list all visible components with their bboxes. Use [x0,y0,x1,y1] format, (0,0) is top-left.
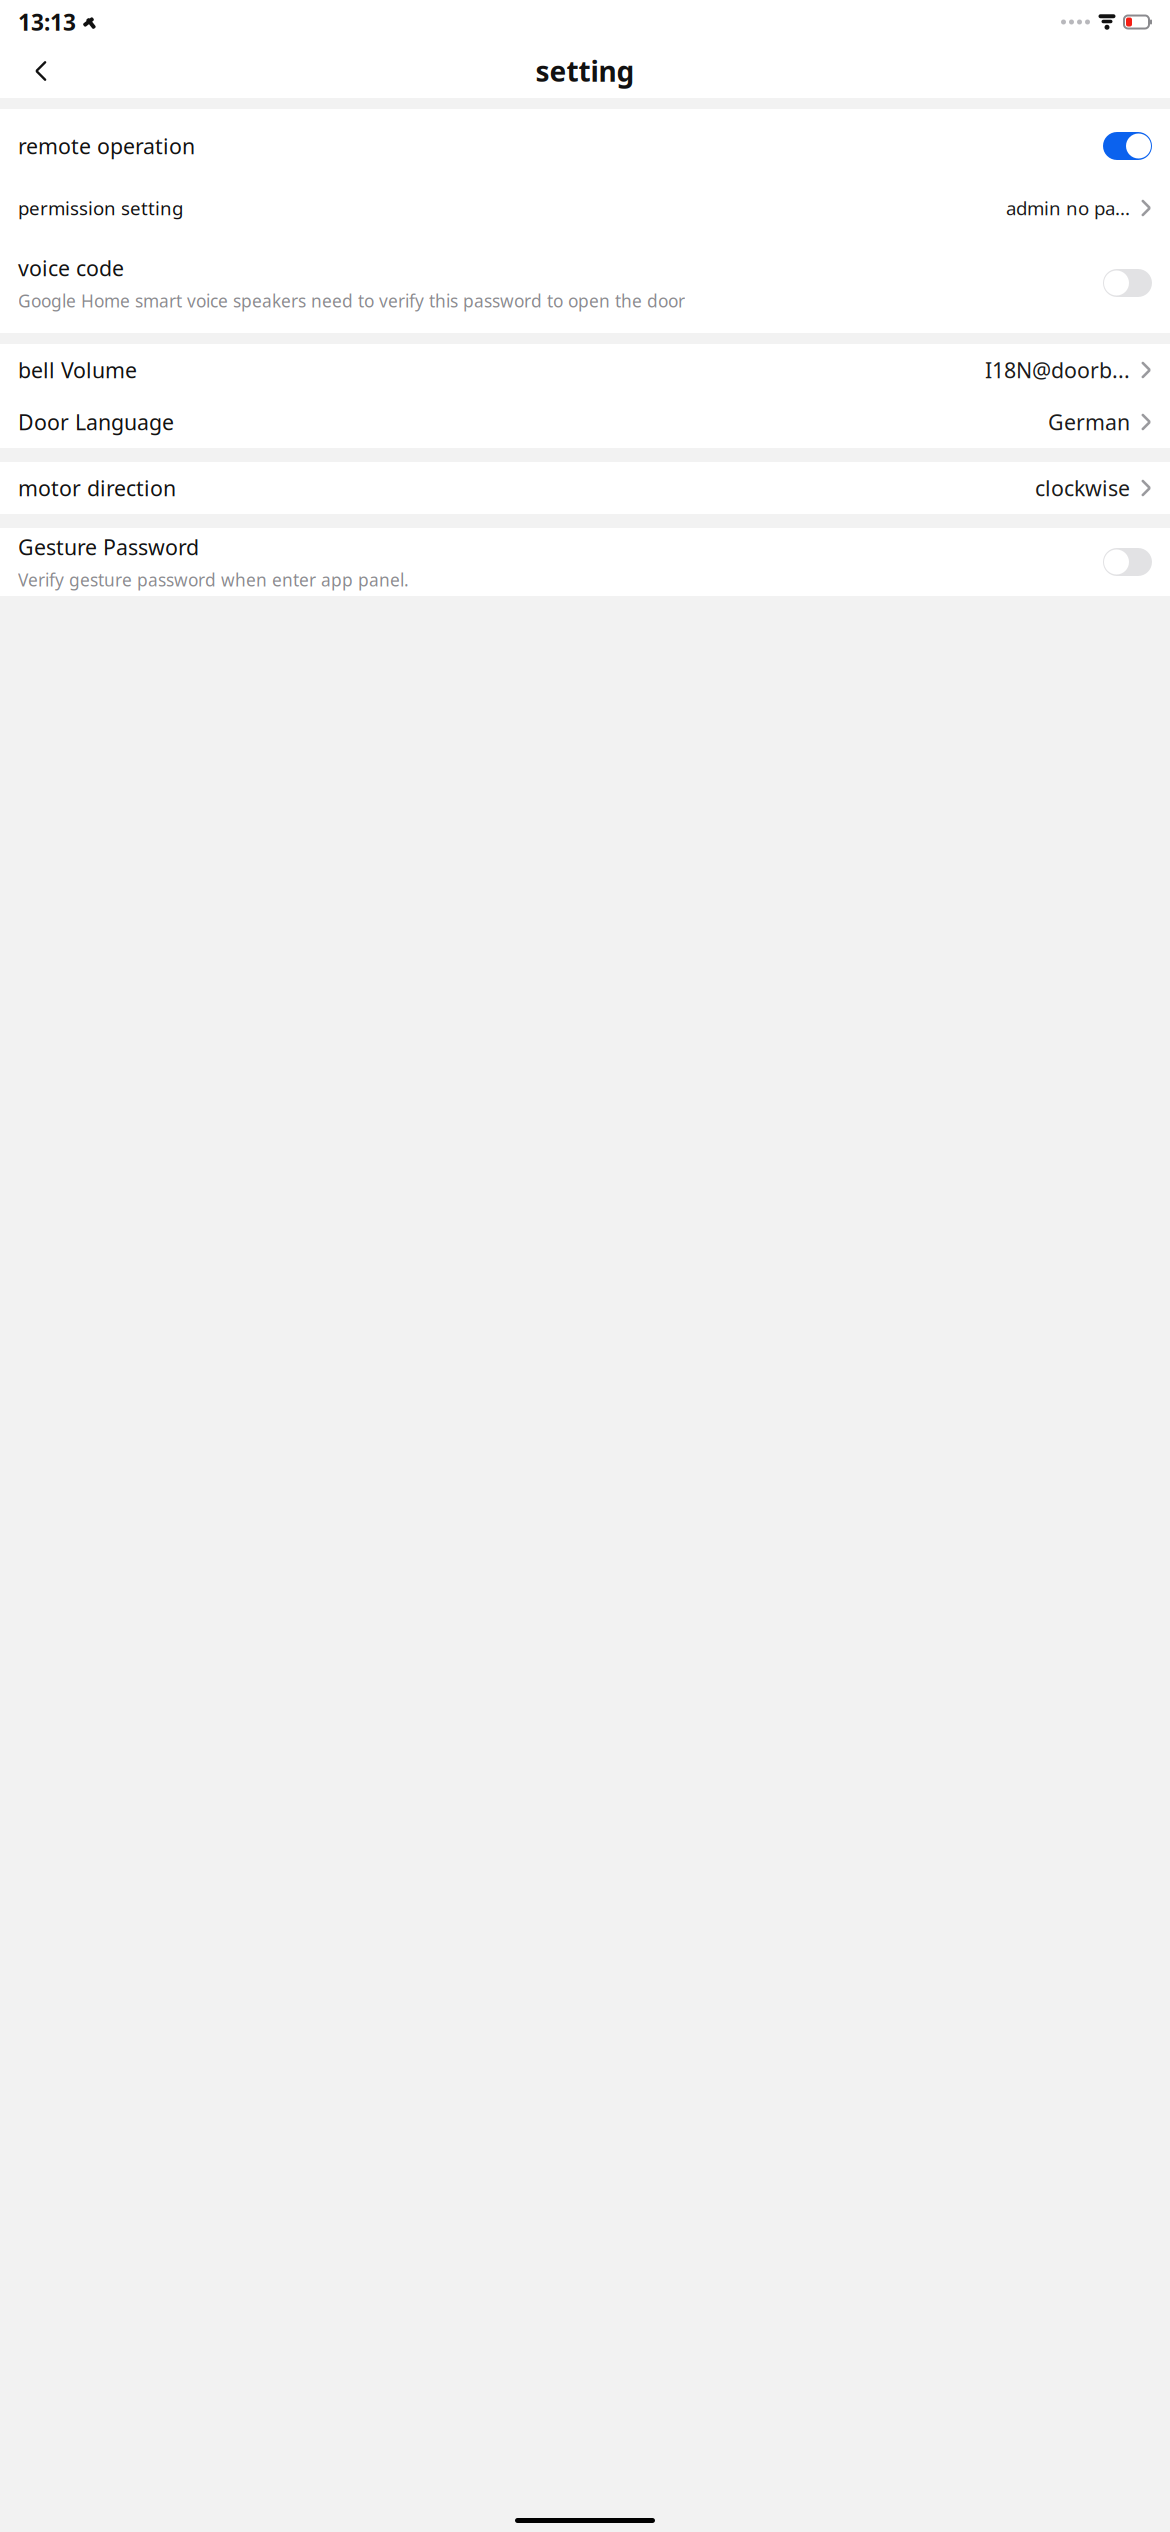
button[interactable]: remote operation [0,109,1170,183]
button[interactable]: motor direction [0,462,1170,514]
staticText: Gesture Password [18,533,199,561]
staticText: motor direction [18,474,176,502]
button[interactable]: Back [18,48,64,94]
staticText: German [1048,408,1130,436]
button[interactable]: voice code [0,233,1170,333]
button[interactable]: Door Language [0,396,1170,448]
staticText: Door Language [18,408,174,436]
button[interactable]: Gesture Password [0,528,1170,596]
staticText: bell Volume [18,356,137,384]
staticText: I18N@doorb... [985,356,1130,384]
staticText: voice code [18,254,124,282]
staticText: admin no pa... [1006,196,1130,220]
staticText: clockwise [1035,474,1130,502]
staticText: 13:13 [18,7,76,37]
staticText: remote operation [18,132,195,160]
staticText: Verify gesture password when enter app p… [18,568,409,591]
staticText: Google Home smart voice speakers need to… [18,289,685,312]
staticText: permission setting [18,196,183,220]
staticText: setting [535,52,634,90]
button[interactable]: bell Volume [0,344,1170,396]
button[interactable]: permission setting [0,183,1170,233]
